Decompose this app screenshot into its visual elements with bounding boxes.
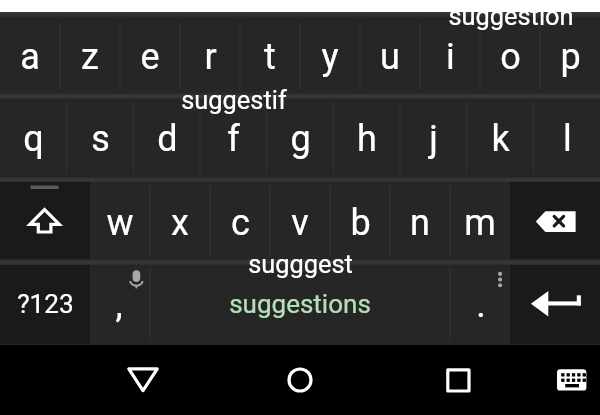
button[interactable]: Back [95, 345, 191, 415]
button[interactable]: Comma [90, 265, 150, 344]
button[interactable]: q [0, 99, 67, 177]
button[interactable]: s [67, 99, 134, 177]
staticText: m [464, 202, 496, 244]
staticText: h [357, 118, 377, 160]
staticText: u [380, 36, 400, 78]
button[interactable]: Shift [0, 182, 90, 259]
button[interactable]: e [120, 20, 180, 93]
staticText: ?123 [17, 289, 74, 320]
button[interactable]: t [240, 20, 300, 93]
staticText: d [157, 118, 178, 160]
staticText: suggestion [448, 1, 574, 31]
staticText: j [429, 118, 438, 160]
button[interactable]: Symbols [0, 265, 90, 344]
staticText: l [563, 118, 572, 160]
staticText: k [491, 118, 510, 160]
staticText: sugggest [248, 249, 353, 279]
staticText: , [115, 284, 123, 326]
button[interactable]: m [450, 182, 510, 259]
button[interactable]: i [420, 20, 480, 93]
button[interactable]: o [480, 20, 540, 93]
button[interactable]: c [210, 182, 270, 259]
staticText: b [350, 202, 371, 244]
button[interactable]: l [533, 99, 600, 177]
staticText: r [204, 36, 217, 78]
staticText: . [476, 284, 486, 326]
button[interactable]: d [133, 99, 200, 177]
staticText: suggestif [181, 85, 287, 115]
button[interactable]: Backspace [510, 182, 600, 259]
staticText: i [446, 36, 455, 78]
button[interactable]: p [540, 20, 600, 93]
staticText: a [20, 36, 40, 78]
button[interactable]: h [333, 99, 400, 177]
button[interactable]: Home [252, 345, 348, 415]
button[interactable]: w [90, 182, 150, 259]
button[interactable]: v [270, 182, 330, 259]
staticText: v [291, 202, 309, 244]
button[interactable]: b [330, 182, 390, 259]
button[interactable]: j [400, 99, 467, 177]
button[interactable]: Enter [510, 265, 600, 344]
button[interactable]: r [180, 20, 240, 93]
staticText: o [500, 36, 521, 78]
staticText: p [560, 36, 581, 78]
staticText: q [23, 118, 44, 160]
button[interactable]: n [390, 182, 450, 259]
button[interactable]: y [300, 20, 360, 93]
staticText: x [171, 202, 189, 244]
button[interactable]: z [60, 20, 120, 93]
staticText: e [140, 36, 160, 78]
staticText: y [321, 36, 339, 78]
staticText: s [91, 118, 110, 160]
staticText: c [231, 202, 250, 244]
button[interactable]: a [0, 20, 60, 93]
button[interactable]: Recent apps [410, 345, 506, 415]
button[interactable]: Space [150, 265, 450, 344]
staticText: g [290, 118, 311, 160]
button[interactable]: u [360, 20, 420, 93]
staticText: t [264, 36, 276, 78]
button[interactable]: f [200, 99, 267, 177]
staticText: z [81, 36, 99, 78]
staticText: w [106, 202, 134, 244]
button[interactable]: g [267, 99, 334, 177]
button[interactable]: Period [450, 265, 510, 344]
button[interactable]: k [467, 99, 534, 177]
button[interactable]: x [150, 182, 210, 259]
staticText: f [227, 118, 240, 160]
button[interactable]: Switch keyboard [540, 345, 600, 415]
staticText: suggestions [229, 289, 371, 319]
staticText: n [410, 202, 430, 244]
